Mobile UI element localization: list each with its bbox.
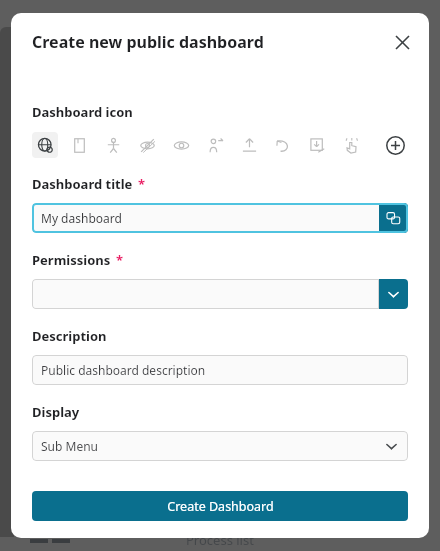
button[interactable]: Person	[100, 132, 126, 158]
button[interactable]: Download	[304, 132, 330, 158]
button[interactable]: Touch	[338, 132, 364, 158]
button[interactable]: Hidden	[134, 132, 160, 158]
staticText: *	[138, 175, 146, 193]
staticText: Sub Menu	[41, 438, 98, 454]
button[interactable]: Add icon	[382, 132, 408, 158]
button[interactable]: Globe	[32, 132, 58, 158]
staticText: Create Dashboard	[167, 498, 274, 515]
staticText: Create new public dashboard	[32, 31, 264, 53]
button[interactable]: Translate	[379, 203, 408, 233]
button[interactable]: Page	[66, 132, 92, 158]
staticText: My dashboard	[41, 210, 122, 226]
button[interactable]: Open permissions	[32, 279, 408, 309]
staticText: Process list	[186, 531, 254, 549]
button[interactable]: Sub Menu	[32, 431, 408, 461]
button[interactable]: My dashboard	[32, 203, 408, 233]
button[interactable]: Add person	[202, 132, 228, 158]
other: Open permissions	[379, 279, 408, 309]
staticText: Dashboard icon	[32, 103, 133, 121]
staticText: Display	[32, 403, 80, 421]
button[interactable]: Eye	[168, 132, 194, 158]
staticText: Public dashboard description	[41, 362, 206, 378]
staticText: Dashboard title	[32, 175, 133, 193]
staticText: Permissions	[32, 251, 111, 269]
button[interactable]: Public dashboard description	[32, 355, 408, 385]
staticText: Description	[32, 327, 107, 345]
staticText: *	[116, 251, 124, 269]
button[interactable]: Close	[385, 25, 419, 59]
button[interactable]: Create Dashboard	[32, 491, 408, 521]
button[interactable]: Upload	[236, 132, 262, 158]
button[interactable]: Undo	[270, 132, 296, 158]
